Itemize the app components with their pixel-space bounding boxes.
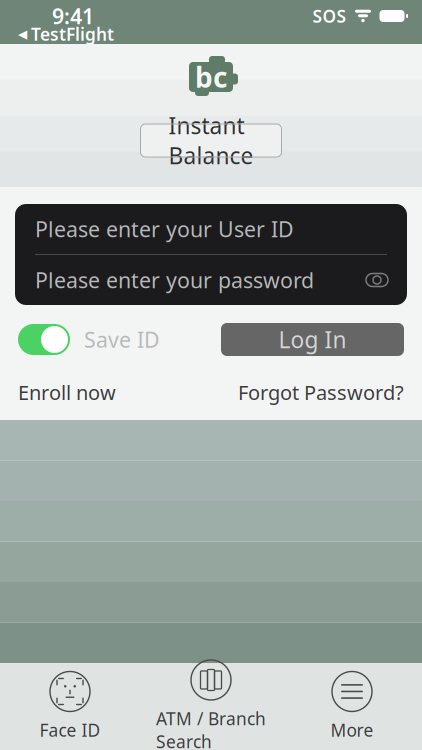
button[interactable]: Enroll now	[18, 379, 116, 406]
staticText: Log In	[278, 324, 346, 354]
staticText: 9:41	[52, 2, 94, 30]
staticText: Forgot Password?	[238, 379, 404, 406]
button[interactable]: Face ID	[0, 670, 140, 742]
button[interactable]: ATM / Branch Search	[140, 670, 282, 742]
button[interactable]: Instant Balance	[140, 124, 281, 157]
button[interactable]: Please enter your password	[15, 255, 407, 305]
staticText: More	[330, 718, 373, 741]
staticText: Please enter your password	[35, 266, 314, 294]
staticText: bc	[195, 58, 227, 96]
button[interactable]: Save ID	[18, 324, 160, 355]
button[interactable]: Log In	[221, 323, 404, 356]
button[interactable]: More	[282, 670, 422, 742]
staticText: SOS	[312, 4, 346, 27]
staticText: ATM / Branch Search	[156, 707, 266, 750]
staticText: Instant Balance	[168, 110, 253, 171]
button[interactable]: Forgot Password?	[238, 379, 404, 406]
staticText: TestFlight	[31, 22, 114, 45]
staticText: Save ID	[84, 325, 160, 354]
staticText: Enroll now	[18, 379, 116, 406]
staticText: Face ID	[39, 718, 100, 741]
button[interactable]: Please enter your User ID	[15, 204, 407, 254]
staticText: ◀	[18, 27, 27, 41]
staticText: Please enter your User ID	[35, 215, 294, 243]
